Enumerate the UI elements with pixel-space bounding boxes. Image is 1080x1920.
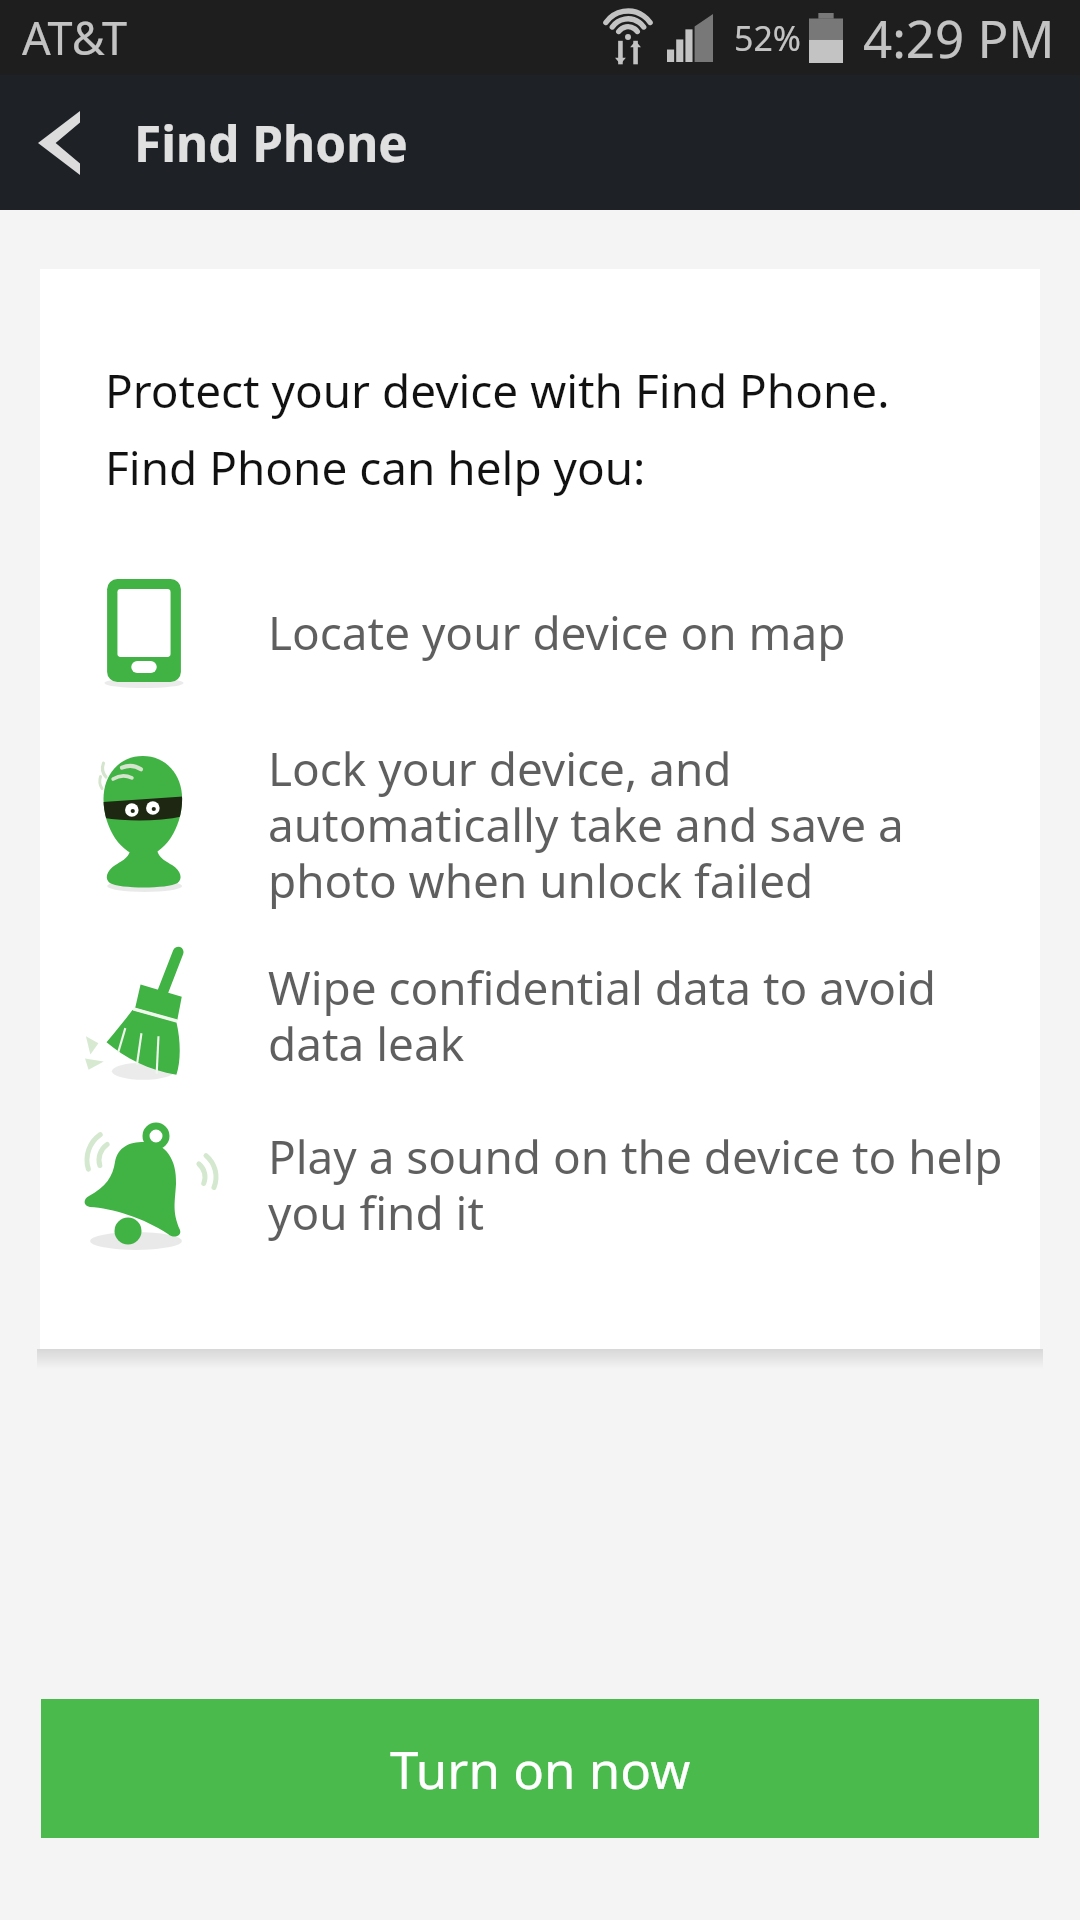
staticText: Protect your device with Find Phone. <box>105 359 890 422</box>
staticText: Find Phone can help you: <box>105 436 646 499</box>
staticText: Lock your device, and automatically take… <box>268 737 1018 911</box>
staticText: AT&T <box>22 7 127 68</box>
button[interactable]: Turn on now <box>41 1699 1039 1838</box>
staticText: Wipe confidential data to avoid data lea… <box>268 956 1018 1074</box>
staticText: Play a sound on the device to help you f… <box>268 1125 1018 1243</box>
staticText: Turn on now <box>390 1734 691 1803</box>
staticText: 52% <box>734 15 801 61</box>
staticText: Locate your device on map <box>268 601 846 664</box>
button[interactable]: Back <box>0 75 118 210</box>
staticText: Find Phone <box>134 109 408 176</box>
staticText: 4:29 PM <box>863 3 1055 72</box>
